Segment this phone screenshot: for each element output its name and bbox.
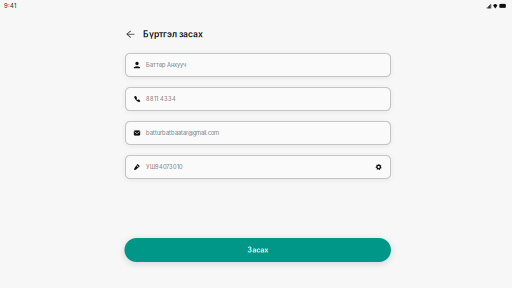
staticText: Бүртгэл засах	[143, 29, 203, 39]
staticText: 9:41	[4, 2, 16, 9]
button[interactable]: Back	[123, 27, 137, 41]
staticText: Баттөр Анхууч	[146, 62, 186, 68]
button[interactable]: 8811 4334	[125, 87, 390, 110]
button[interactable]: УШ94073010	[125, 155, 390, 178]
button[interactable]: Засах	[124, 238, 391, 262]
staticText: 8811 4334	[146, 96, 176, 102]
staticText: УШ94073010	[146, 164, 183, 170]
staticText: Засах	[247, 246, 268, 254]
button[interactable]: batturbatbaatar@gmail.com	[125, 121, 390, 144]
button[interactable]: Бүртгэл засах	[143, 27, 205, 41]
button[interactable]: Баттөр Анхууч	[125, 53, 390, 76]
staticText: batturbatbaatar@gmail.com	[146, 130, 219, 136]
